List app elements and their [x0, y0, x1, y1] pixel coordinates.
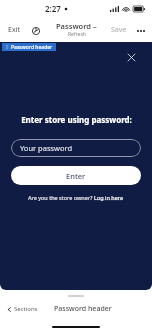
button[interactable]: Exit [6, 22, 22, 38]
button[interactable]: Sections [5, 303, 40, 315]
button[interactable]: Save [109, 22, 129, 38]
button[interactable]: Close [124, 50, 138, 64]
staticText: Enter store using password: [21, 114, 132, 125]
staticText: Exit [8, 25, 20, 35]
staticText: Your password [20, 143, 73, 153]
button[interactable]: Your password [11, 139, 141, 157]
staticText: Password header [11, 44, 53, 51]
staticText: Enter [66, 171, 86, 181]
button[interactable]: Preview [29, 24, 42, 37]
button[interactable]: Enter [11, 166, 141, 185]
staticText: Save [111, 25, 127, 35]
staticText: Password header [54, 304, 112, 314]
staticText: Refresh [68, 31, 86, 38]
staticText: Password – [56, 21, 97, 31]
staticText: Are you the store owner? [28, 194, 94, 201]
button[interactable]: Log in here [94, 194, 124, 201]
staticText: Sections [14, 305, 38, 313]
button[interactable]: More options [134, 24, 147, 37]
staticText: 2:27 [45, 3, 61, 14]
button[interactable]: Password header [5, 43, 53, 51]
